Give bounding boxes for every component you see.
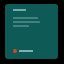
button[interactable]: Article card [5,4,58,59]
button[interactable]: Source [13,49,51,53]
